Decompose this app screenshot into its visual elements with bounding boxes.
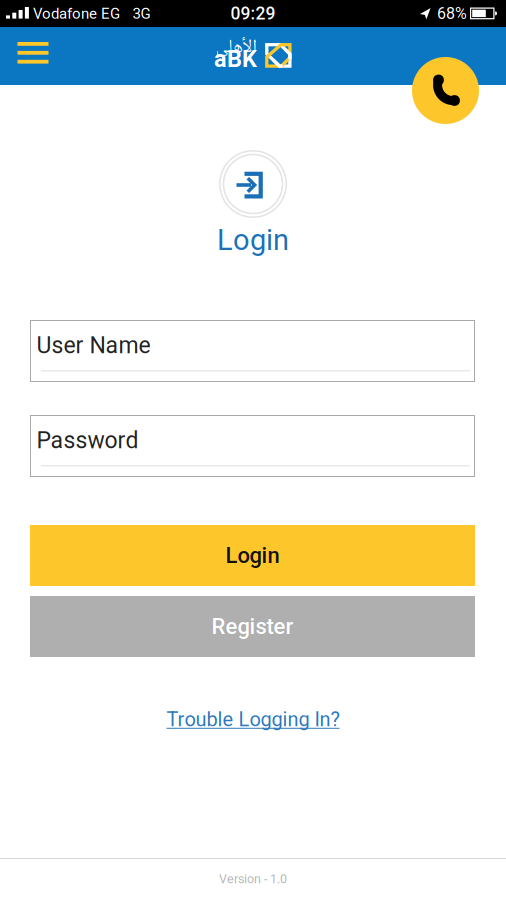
staticText: Login <box>217 223 289 257</box>
staticText: Vodafone EG <box>33 5 120 22</box>
button[interactable]: Login <box>30 525 475 586</box>
staticText: Login <box>225 543 279 568</box>
button[interactable]: Call <box>412 57 479 124</box>
button[interactable]: Menu <box>17 42 48 64</box>
staticText: الأهلي <box>215 32 256 64</box>
button[interactable]: Trouble Logging In? <box>166 708 339 731</box>
staticText: User Name <box>36 332 150 359</box>
staticText: 09:29 <box>230 3 275 24</box>
staticText: aBK <box>214 45 257 73</box>
button[interactable]: Register <box>30 596 475 657</box>
staticText: Password <box>36 427 138 454</box>
staticText: Version - 1.0 <box>219 872 287 886</box>
staticText: Register <box>211 614 293 639</box>
button[interactable]: Password <box>30 415 475 477</box>
button[interactable]: User Name <box>30 320 475 382</box>
staticText: Trouble Logging In? <box>166 708 339 731</box>
staticText: 68% <box>437 4 467 23</box>
staticText: 3G <box>132 5 150 22</box>
